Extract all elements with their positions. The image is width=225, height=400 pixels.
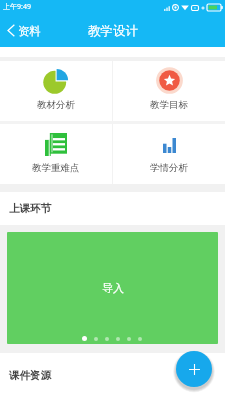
button[interactable]: 教学重难点 [0, 124, 112, 184]
button[interactable]: 资料 [0, 14, 49, 47]
button[interactable]: 教学目标 [113, 61, 225, 121]
staticText: 教学设计 [88, 23, 138, 39]
staticText: 教学重难点 [32, 162, 80, 174]
staticText: 教材分析 [37, 99, 75, 111]
staticText: 教学目标 [150, 99, 188, 111]
staticText: 上课环节 [9, 202, 51, 215]
button[interactable]: 学情分析 [113, 124, 225, 184]
staticText: 上午9:49 [3, 2, 31, 12]
staticText: 学情分析 [150, 162, 188, 174]
staticText: 课件资源 [9, 369, 51, 382]
button[interactable]: 教材分析 [0, 61, 112, 121]
staticText: 资料 [18, 24, 41, 38]
staticText: 导入 [102, 281, 124, 295]
button[interactable]: Add [176, 351, 212, 387]
button[interactable]: 导入 [7, 232, 218, 344]
